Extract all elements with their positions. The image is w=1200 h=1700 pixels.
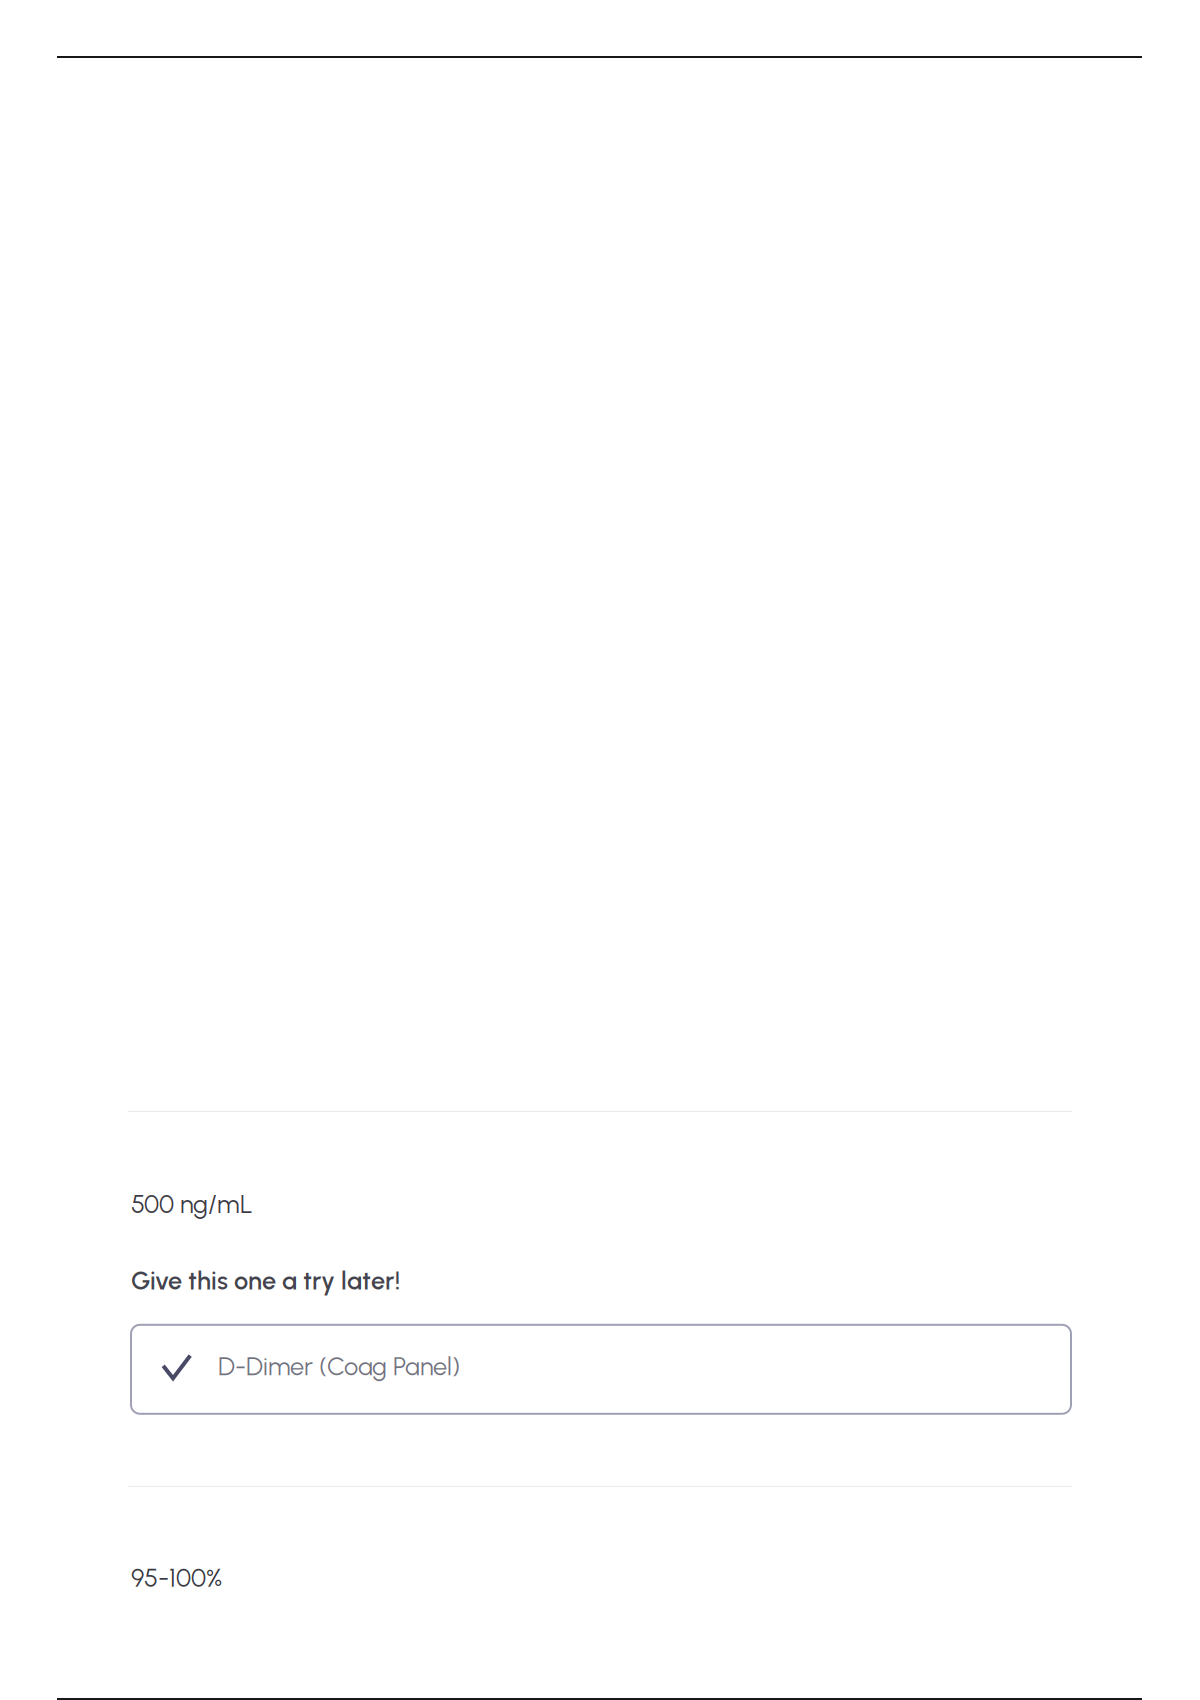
staticText: 500 ng/mL (131, 1189, 253, 1219)
staticText: 95-100% (131, 1563, 222, 1593)
staticText: Give this one a try later! (131, 1265, 400, 1296)
staticText: D-Dimer (Coag Panel) (218, 1351, 460, 1381)
button[interactable]: D-Dimer (Coag Panel) (131, 1325, 1071, 1414)
